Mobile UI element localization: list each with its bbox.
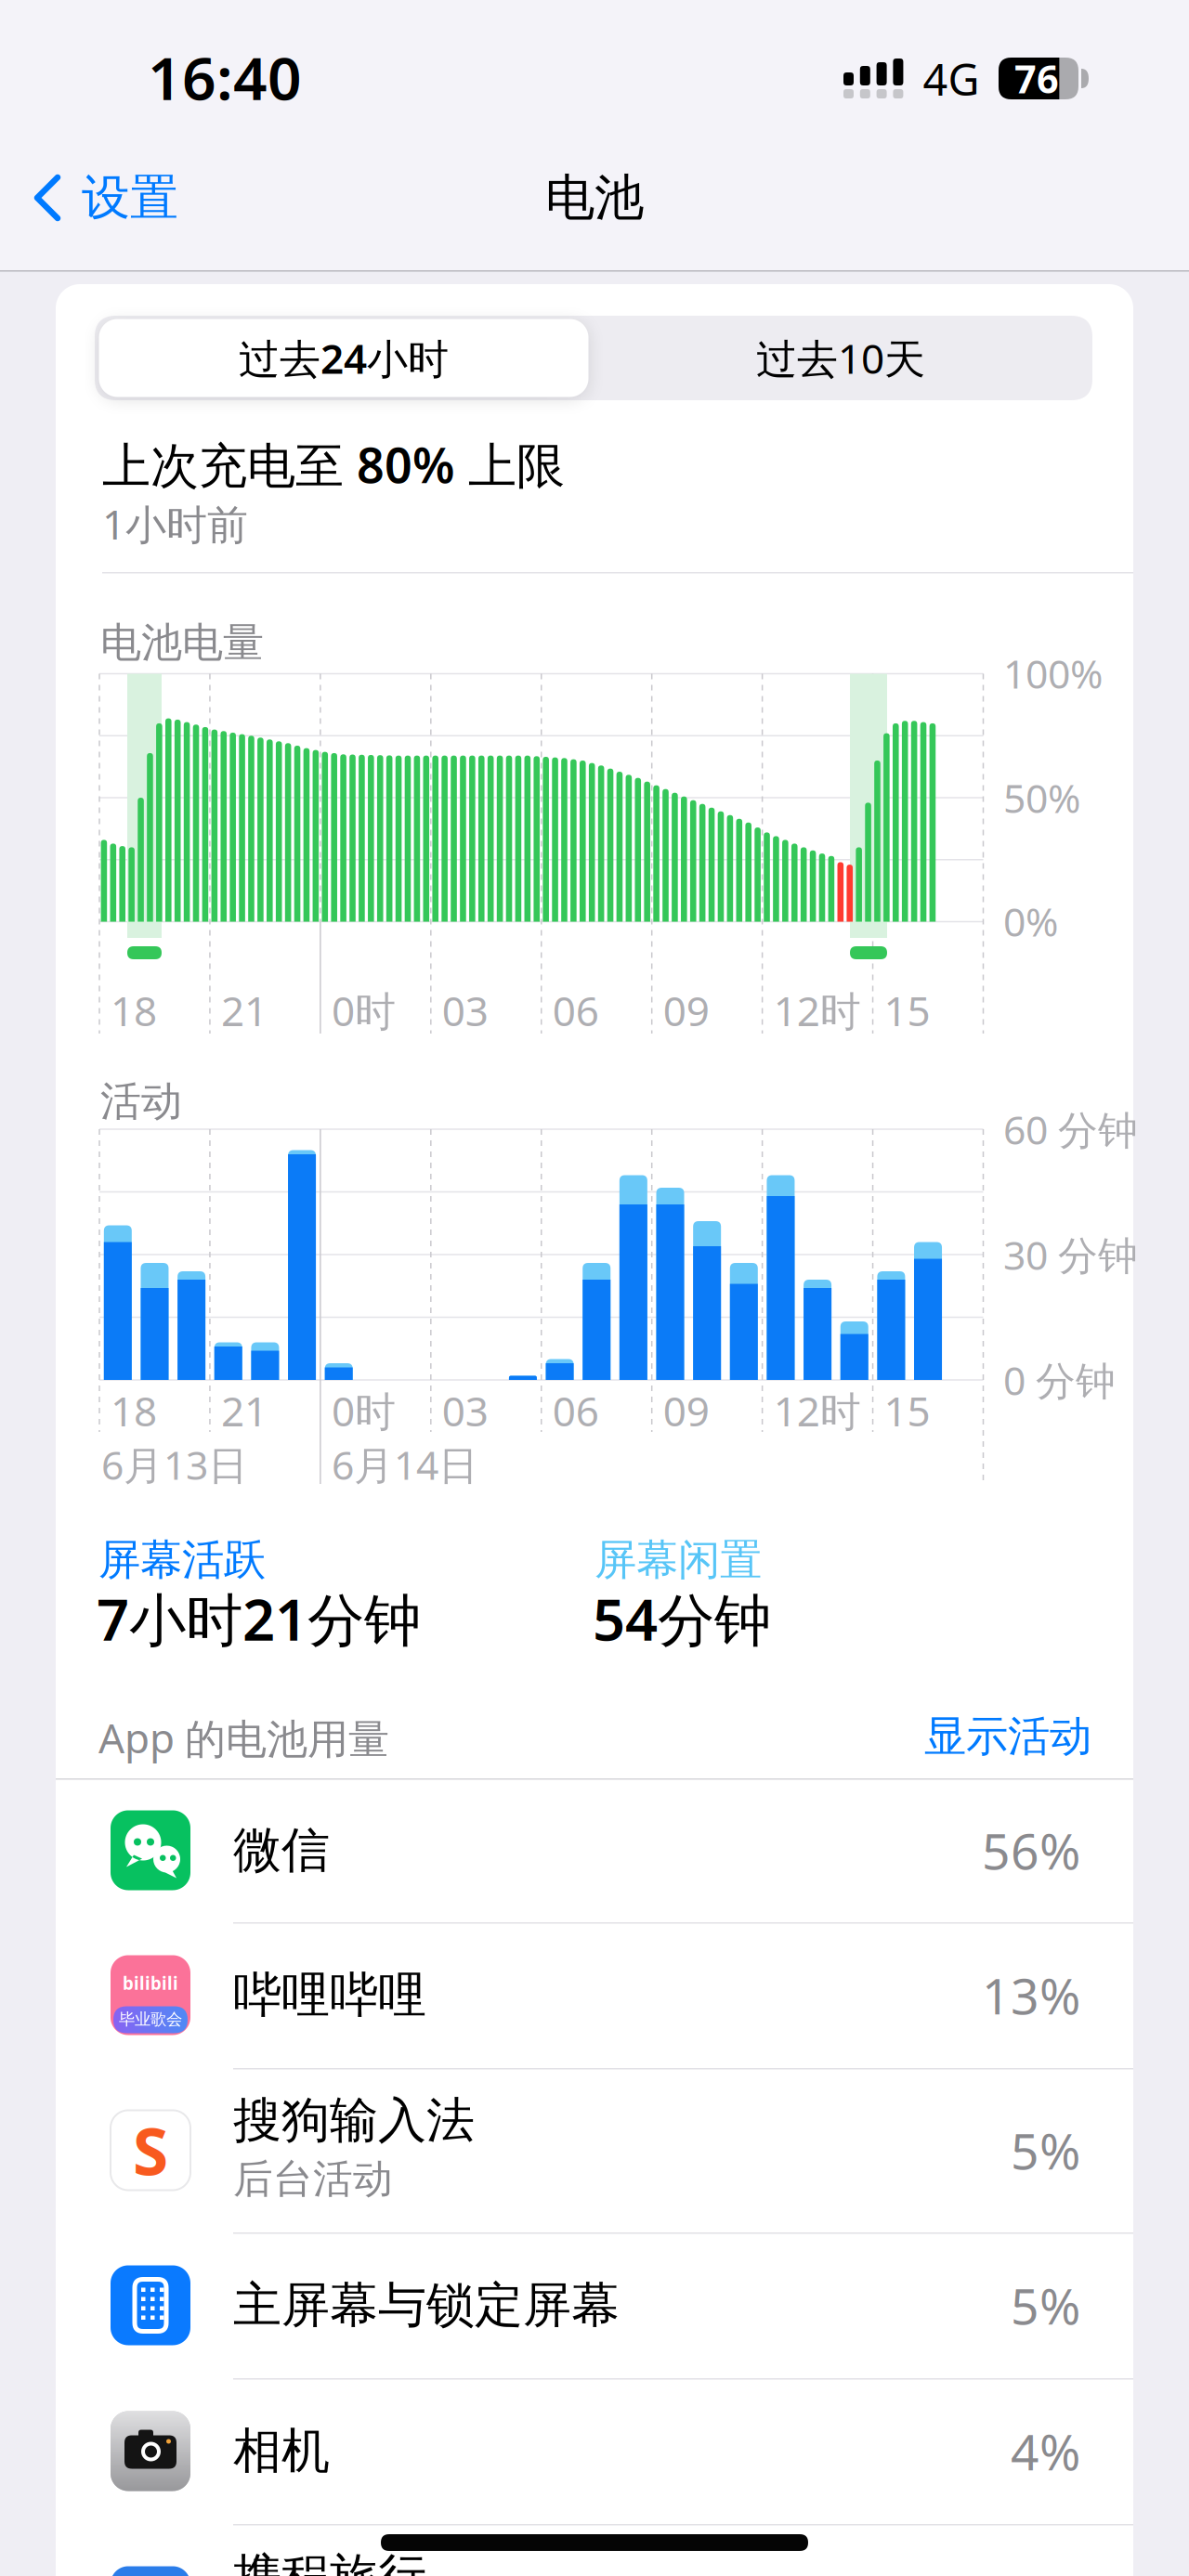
staticText: 18 — [111, 1383, 157, 1438]
staticText: 5% — [1011, 2117, 1080, 2183]
staticText: 09 — [663, 983, 709, 1037]
button[interactable]: 过去24小时 — [99, 319, 588, 397]
staticText: 56% — [982, 1817, 1080, 1883]
staticText: 1小时前 — [102, 497, 248, 551]
staticText: 屏幕闲置 — [594, 1534, 762, 1586]
staticText: 携程旅行 — [233, 2547, 426, 2576]
staticText: 15 — [884, 983, 930, 1037]
staticText: 哔哩哔哩 — [233, 1966, 426, 2025]
staticText: 过去24小时 — [239, 331, 449, 385]
staticText: 显示活动 — [924, 1711, 1091, 1762]
staticText: 76 — [1014, 53, 1059, 104]
staticText: 4G — [923, 50, 980, 108]
staticText: 6月14日 — [332, 1438, 478, 1491]
staticText: 03 — [442, 1383, 488, 1438]
staticText: 0时 — [332, 1383, 396, 1438]
button[interactable]: 返回设置 — [33, 165, 238, 230]
staticText: 21 — [221, 983, 267, 1037]
staticText: 4% — [1011, 2418, 1080, 2484]
staticText: 电池 — [545, 167, 644, 228]
staticText: 微信 — [233, 1821, 330, 1880]
staticText: 12时 — [773, 1383, 861, 1438]
staticText: S — [133, 2108, 168, 2193]
button[interactable]: 相机 — [56, 2378, 1133, 2524]
button[interactable]: 携程旅行 — [56, 2524, 1133, 2576]
button[interactable]: S — [56, 2068, 1133, 2232]
staticText: 15 — [884, 1383, 930, 1438]
staticText: 06 — [553, 1383, 599, 1438]
staticText: bilibili — [123, 1972, 178, 1995]
staticText: 7小时21分钟 — [97, 1581, 421, 1656]
staticText: 18 — [111, 983, 157, 1037]
staticText: 16:40 — [148, 38, 302, 117]
staticText: App 的电池用量 — [98, 1710, 389, 1765]
button[interactable]: 过去10天 — [599, 319, 1082, 397]
staticText: 5% — [1011, 2272, 1080, 2338]
staticText: 30 分钟 — [1003, 1228, 1138, 1281]
staticText: 上次充电至 80% 上限 — [102, 432, 565, 496]
staticText: 13% — [982, 1962, 1080, 2028]
staticText: 06 — [553, 983, 599, 1037]
staticText: 60 分钟 — [1003, 1103, 1138, 1156]
staticText: 0时 — [332, 983, 396, 1037]
staticText: 100% — [1003, 647, 1103, 700]
staticText: 0% — [1003, 895, 1058, 948]
staticText: 21 — [221, 1383, 267, 1438]
staticText: 03 — [442, 983, 488, 1037]
staticText: 毕业歌会 — [119, 2009, 182, 2029]
button[interactable]: 主屏幕与锁定屏幕 — [56, 2232, 1133, 2378]
staticText: 屏幕活跃 — [98, 1534, 266, 1586]
button[interactable]: 显示活动 — [813, 1711, 1091, 1763]
staticText: 50% — [1003, 771, 1080, 824]
staticText: 主屏幕与锁定屏幕 — [233, 2276, 620, 2335]
staticText: 搜狗输入法 — [233, 2091, 475, 2150]
staticText: 09 — [663, 1383, 709, 1438]
button[interactable]: 微信 — [56, 1778, 1133, 1922]
staticText: 电池电量 — [100, 618, 264, 668]
staticText: 活动 — [100, 1076, 182, 1126]
staticText: 过去10天 — [756, 331, 925, 385]
button[interactable]: bilibili — [56, 1922, 1133, 2068]
staticText: 0 分钟 — [1003, 1354, 1116, 1406]
staticText: 54分钟 — [593, 1581, 771, 1656]
staticText: 后台活动 — [233, 2155, 393, 2203]
staticText: 6月13日 — [101, 1438, 248, 1491]
staticText: 12时 — [773, 983, 861, 1037]
staticText: 相机 — [233, 2421, 330, 2481]
staticText: 设置 — [82, 168, 178, 228]
